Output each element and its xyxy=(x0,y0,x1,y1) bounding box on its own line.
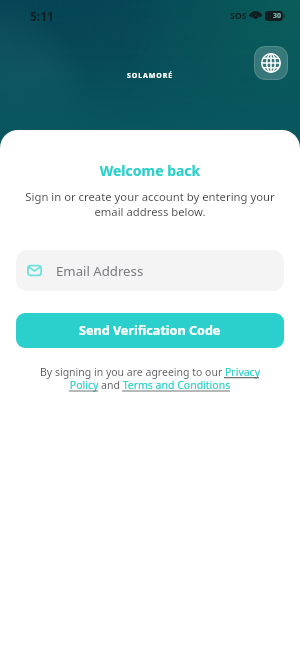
staticText: Sign in or create your account by enteri… xyxy=(20,189,280,219)
button[interactable]: Change language xyxy=(254,46,288,80)
staticText: 30 xyxy=(273,11,282,21)
button[interactable]: Email Address xyxy=(16,250,284,291)
button[interactable]: By signing in you are agreeing to our Pr… xyxy=(0,365,300,392)
button[interactable]: Send Verification Code xyxy=(16,313,284,348)
staticText: By signing in you are agreeing to our Pr… xyxy=(36,365,264,392)
staticText: SOS xyxy=(230,9,247,21)
staticText: SOLAMORÉ xyxy=(127,71,174,81)
staticText: 5:11 xyxy=(30,8,54,24)
staticText: Email Address xyxy=(56,262,144,280)
staticText: Welcome back xyxy=(0,161,300,180)
staticText: Send Verification Code xyxy=(79,322,221,339)
